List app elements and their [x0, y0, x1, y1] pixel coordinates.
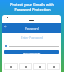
button[interactable]: Action: [33, 63, 46, 70]
staticText: Enter Password: [21, 36, 43, 40]
staticText: SET PASSWORD: [23, 51, 41, 54]
button[interactable]: Back: [4, 25, 7, 28]
button[interactable]: Action: [47, 63, 60, 70]
staticText: Protect your Gmails with: [10, 2, 54, 7]
button[interactable]: Action: [4, 63, 18, 70]
staticText: Password: [25, 27, 39, 31]
button[interactable]: Action: [19, 63, 32, 70]
staticText: Password Protection: [14, 7, 51, 12]
button[interactable]: SET PASSWORD: [4, 50, 59, 54]
